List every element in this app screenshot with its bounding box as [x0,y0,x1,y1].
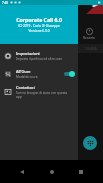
staticText: 7:48 [2,1,8,5]
button[interactable]: Toggle dark mode [64,71,75,77]
staticText: Contattaci [16,85,35,90]
button[interactable]: Settings [0,47,78,65]
button[interactable]: Back [15,165,29,179]
button[interactable]: Home [45,165,59,179]
button[interactable]: Recents [74,165,88,179]
staticText: Imposta il prefisso ed altre cose [16,57,63,61]
staticText: Versione 6.0.0 [28,29,50,33]
button[interactable]: Contact us [0,83,78,101]
other: Dark mode [4,70,12,78]
staticText: Recents [83,36,95,40]
staticText: Scrivici bisogno di aiuto con questa app [16,91,67,99]
staticText: Modalità scura [16,75,38,79]
staticText: CHIAMA [85,47,97,51]
staticText: Corporate Call 6.0 [16,16,62,23]
staticText: All'Oure [16,69,31,74]
staticText: (C) 2019 - Carlo Di Giuseppe [18,24,60,28]
staticText: Impostazioni [16,51,40,56]
button[interactable]: Dark mode [0,65,78,83]
other: Contact us [4,88,12,96]
button[interactable]: Call [83,136,97,150]
other: Settings [4,52,12,60]
button[interactable]: Recents [78,28,100,40]
